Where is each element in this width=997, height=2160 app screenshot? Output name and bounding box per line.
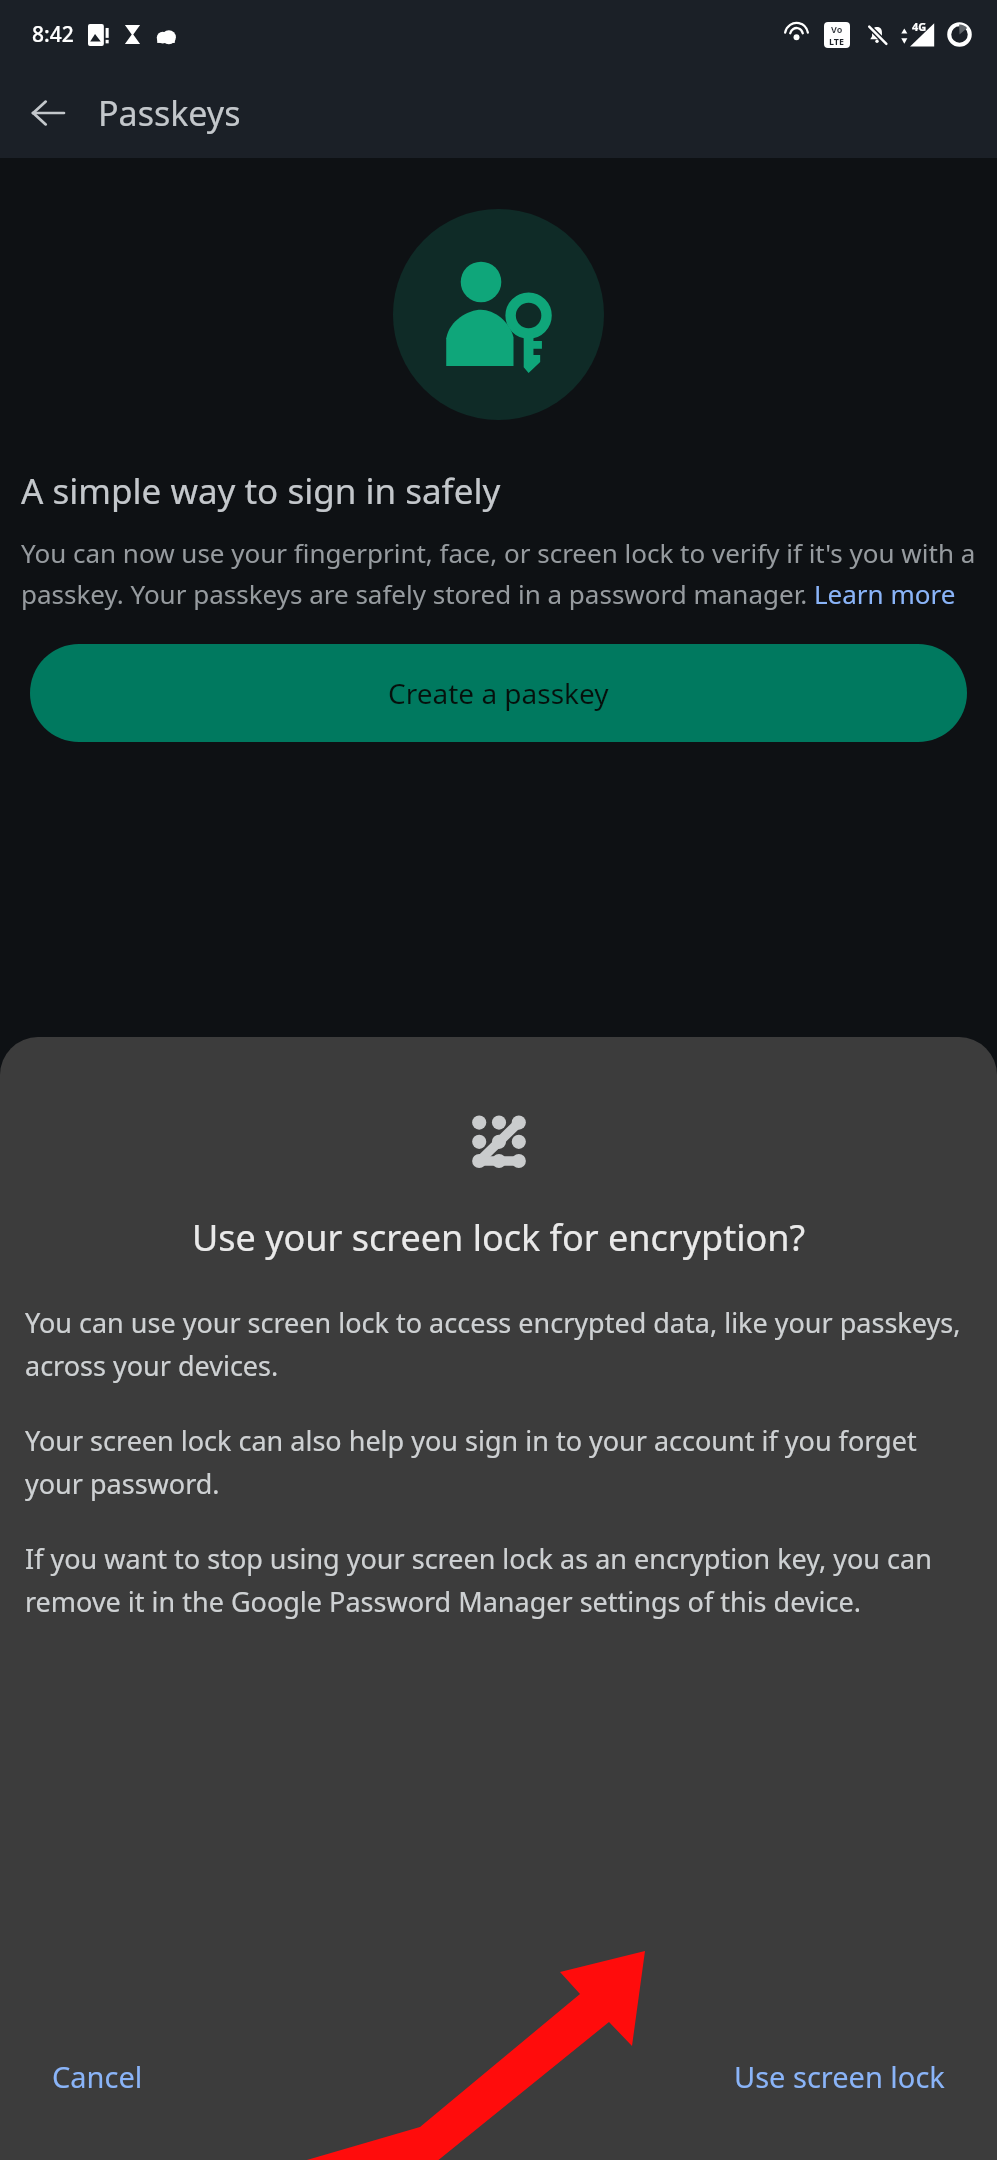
staticText: 4G: [912, 19, 927, 34]
button[interactable]: Use screen lock: [704, 2041, 975, 2112]
staticText: 8:42: [32, 20, 74, 49]
staticText: Your screen lock can also help you sign …: [25, 1422, 972, 1502]
button[interactable]: Back: [16, 81, 80, 145]
staticText: You can use your screen lock to access e…: [25, 1304, 972, 1384]
staticText: Use screen lock: [734, 2057, 945, 2096]
staticText: If you want to stop using your screen lo…: [25, 1540, 972, 1620]
staticText: You can now use your fingerprint, face, …: [21, 535, 976, 612]
staticText: Passkeys: [98, 90, 241, 136]
staticText: LTE: [829, 35, 845, 47]
staticText: Use your screen lock for encryption?: [60, 1213, 937, 1262]
button[interactable]: Create a passkey: [30, 644, 967, 742]
staticText: Create a passkey: [388, 674, 609, 712]
staticText: A simple way to sign in safely: [21, 467, 501, 515]
button[interactable]: Cancel: [22, 2041, 173, 2112]
staticText: Vo: [831, 23, 843, 35]
staticText: Cancel: [52, 2057, 143, 2096]
